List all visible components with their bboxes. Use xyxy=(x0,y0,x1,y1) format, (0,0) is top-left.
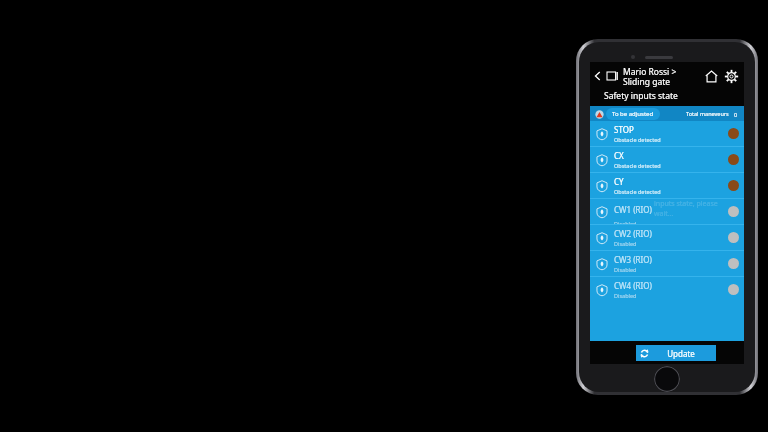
staticText: Total maneveurs xyxy=(686,110,729,117)
staticText: To be adjusted xyxy=(612,110,654,118)
button[interactable]: CW2 (RIO) xyxy=(590,225,744,250)
staticText: CW1 (RIO) xyxy=(614,204,652,215)
staticText: Disabled xyxy=(614,266,637,273)
staticText: Obstacle detected xyxy=(614,136,661,143)
button[interactable]: Back xyxy=(592,65,604,87)
staticText: CW4 (RIO) xyxy=(614,280,652,291)
staticText: Safety inputs state xyxy=(604,90,678,102)
staticText: Obstacle detected xyxy=(614,162,661,169)
staticText: CW3 (RIO) xyxy=(614,254,652,265)
staticText: Disabled xyxy=(614,220,637,224)
button[interactable]: CW3 (RIO) xyxy=(590,251,744,276)
staticText: Obstacle detected xyxy=(614,188,661,195)
staticText: Mario Rossi > Sliding gate xyxy=(623,66,701,87)
staticText: Disabled xyxy=(614,292,637,299)
staticText: 0 xyxy=(734,111,738,118)
staticText: inputs state, please wait... xyxy=(654,199,728,219)
button[interactable]: CX xyxy=(590,147,744,172)
button[interactable]: STOP xyxy=(590,121,744,146)
staticText: CX xyxy=(614,150,624,161)
button[interactable]: Home xyxy=(701,66,721,86)
button[interactable]: Device xyxy=(604,65,620,87)
button[interactable]: Update xyxy=(636,345,716,361)
staticText: STOP xyxy=(614,124,634,135)
button[interactable]: Settings xyxy=(721,66,741,86)
staticText: CW2 (RIO) xyxy=(614,228,652,239)
staticText: Disabled xyxy=(614,240,637,247)
button[interactable]: To be adjusted xyxy=(606,108,660,120)
button[interactable]: CY xyxy=(590,173,744,198)
staticText: Update xyxy=(667,348,695,359)
button[interactable]: CW1 (RIO) xyxy=(590,199,744,224)
other: Home button xyxy=(654,366,680,392)
button[interactable]: CW4 (RIO) xyxy=(590,277,744,302)
staticText: CY xyxy=(614,176,624,187)
